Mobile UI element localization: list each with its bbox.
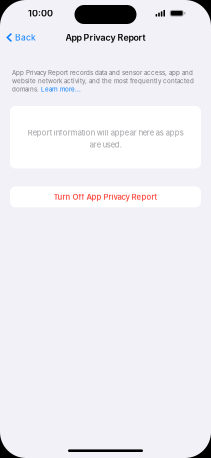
staticText: App Privacy Report records data and sens…	[12, 69, 194, 93]
button[interactable]: Back	[0, 28, 41, 47]
staticText: Turn Off App Privacy Report	[53, 192, 157, 201]
staticText: Report information will appear here as a…	[27, 128, 183, 149]
staticText: 10:00	[28, 8, 53, 19]
staticText: App Privacy Report	[65, 32, 145, 43]
button[interactable]: Turn Off App Privacy Report	[10, 186, 201, 207]
staticText: Back	[15, 32, 36, 43]
